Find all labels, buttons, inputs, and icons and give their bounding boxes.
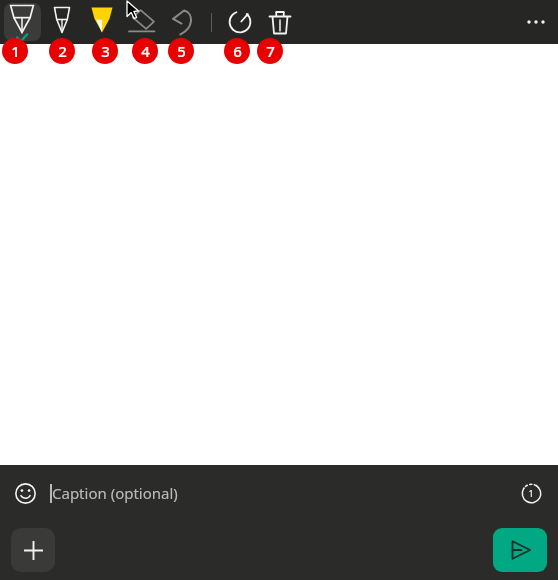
staticText: 4 [141,41,150,61]
button[interactable]: Eraser [122,0,162,44]
button[interactable]: Thin pen [42,0,82,44]
button[interactable]: Send [493,528,547,572]
button[interactable]: Caption (optional) [50,465,514,521]
button[interactable]: Add media [11,528,55,572]
button[interactable]: Delete [260,0,300,44]
staticText: Caption (optional) [52,483,178,503]
staticText: 2 [58,41,67,61]
staticText: 6 [233,41,242,61]
staticText: 1 [11,41,20,61]
staticText: 7 [266,41,275,61]
button[interactable]: More options [514,0,558,44]
staticText: 5 [177,41,186,61]
staticText: 1 [528,487,534,499]
button[interactable]: Pen [2,0,42,44]
button[interactable]: Undo [162,0,202,44]
button[interactable]: Emoji [8,476,42,510]
button[interactable]: View once [514,476,548,510]
button[interactable]: Highlighter [82,0,122,44]
button[interactable]: Rotate [220,0,260,44]
staticText: 3 [101,41,110,61]
